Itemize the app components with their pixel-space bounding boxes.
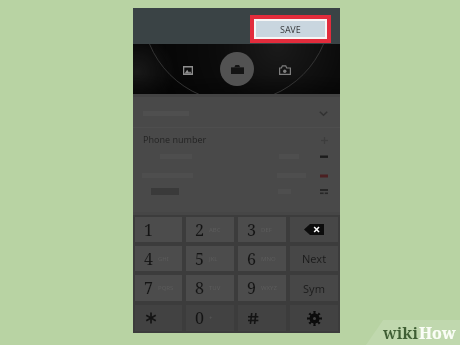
- other: Settings: [307, 311, 322, 326]
- button[interactable]: [133, 167, 340, 184]
- button[interactable]: 8: [186, 275, 234, 301]
- staticText: PQRS: [158, 284, 174, 292]
- staticText: 2: [195, 219, 204, 241]
- staticText: Phone number: [143, 133, 207, 145]
- staticText: Sym: [303, 281, 325, 296]
- button[interactable]: 9: [238, 275, 286, 301]
- staticText: TUV: [209, 284, 221, 292]
- staticText: ABC: [209, 226, 221, 234]
- staticText: 1: [144, 219, 153, 241]
- button[interactable]: Sym: [290, 275, 338, 301]
- button[interactable]: 3: [238, 217, 286, 242]
- staticText: GHI: [158, 255, 169, 263]
- other: Backspace: [304, 224, 324, 235]
- button[interactable]: 7: [135, 275, 182, 301]
- button[interactable]: SAVE: [256, 21, 325, 37]
- button[interactable]: Pound: [238, 305, 286, 331]
- button[interactable]: [133, 148, 340, 165]
- button[interactable]: 2: [186, 217, 234, 242]
- other: Pound: [248, 313, 259, 324]
- staticText: 0: [195, 307, 204, 329]
- staticText: WXYZ: [261, 284, 277, 292]
- staticText: 4: [144, 248, 153, 270]
- staticText: wiki: [383, 322, 419, 344]
- button[interactable]: Next: [290, 246, 338, 271]
- button[interactable]: 5: [186, 246, 234, 271]
- staticText: DEF: [261, 226, 272, 234]
- staticText: 6: [247, 248, 256, 270]
- staticText: 7: [144, 277, 153, 299]
- staticText: Next: [302, 251, 327, 266]
- other: Star: [145, 312, 157, 324]
- staticText: How: [419, 322, 456, 344]
- staticText: 3: [247, 219, 256, 241]
- button[interactable]: [133, 183, 340, 200]
- staticText: 5: [195, 248, 204, 270]
- button[interactable]: Backspace: [290, 217, 338, 242]
- staticText: SAVE: [280, 23, 301, 35]
- staticText: 9: [247, 277, 256, 299]
- button[interactable]: 4: [135, 246, 182, 271]
- staticText: JKL: [209, 255, 218, 263]
- button[interactable]: Take photo: [220, 52, 254, 86]
- button[interactable]: 6: [238, 246, 286, 271]
- staticText: MNO: [261, 255, 276, 263]
- button[interactable]: Star: [135, 305, 182, 331]
- button[interactable]: 0: [186, 305, 234, 331]
- button[interactable]: Settings: [290, 305, 338, 331]
- button[interactable]: 1: [135, 217, 182, 242]
- staticText: 8: [195, 277, 204, 299]
- button[interactable]: Choose from gallery: [179, 61, 197, 79]
- staticText: +: [209, 314, 213, 322]
- button[interactable]: Switch camera: [276, 61, 294, 79]
